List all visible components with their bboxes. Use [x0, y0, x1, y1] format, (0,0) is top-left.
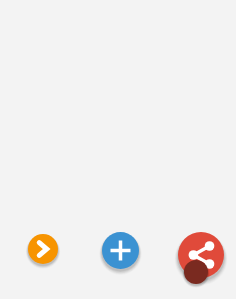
button[interactable]: Share	[178, 232, 224, 278]
button[interactable]: Next	[28, 234, 58, 264]
button[interactable]: More options	[184, 260, 208, 284]
button[interactable]: Add	[102, 232, 139, 269]
